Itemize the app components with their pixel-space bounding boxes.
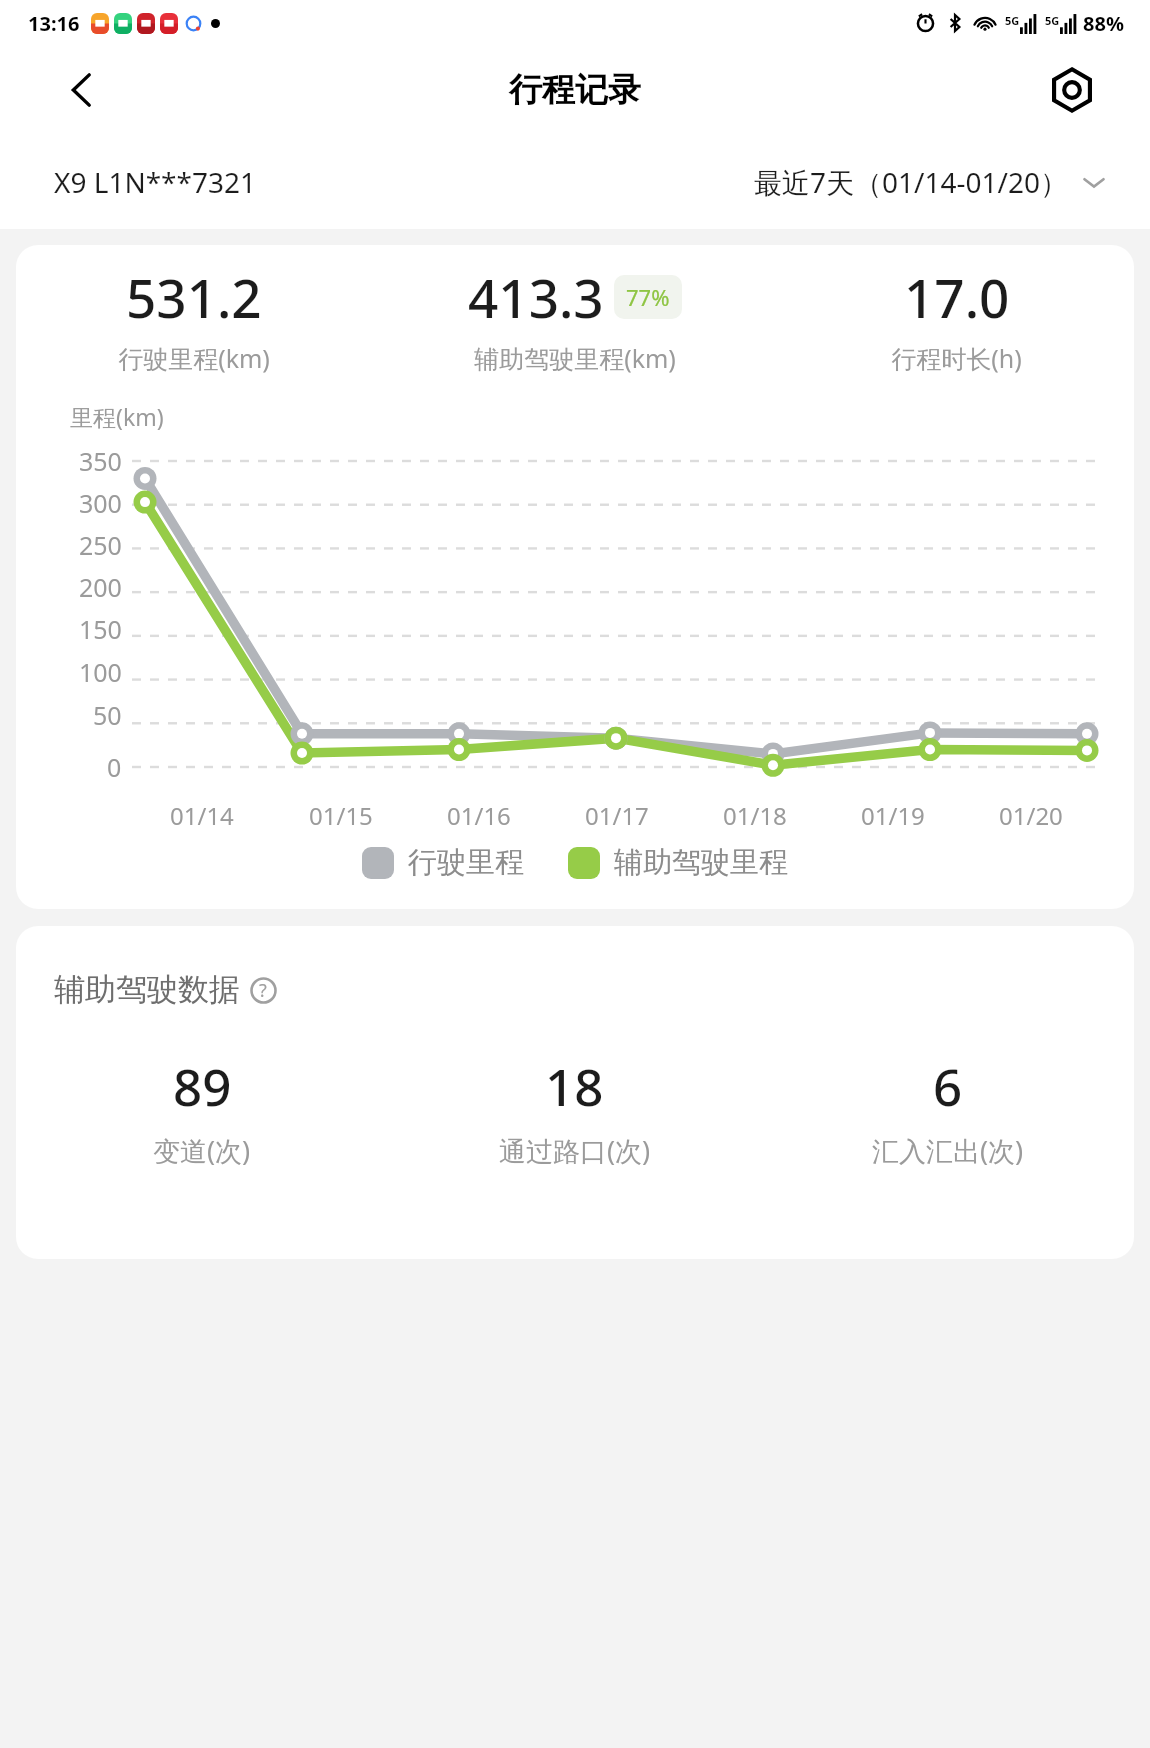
button[interactable]: 辅助驾驶里程 (568, 844, 788, 881)
staticText: 变道(次) (153, 1132, 251, 1169)
staticText: 18 (545, 1051, 604, 1120)
staticText: 行驶里程(km) (118, 341, 270, 375)
button[interactable]: Settings (1040, 58, 1104, 122)
staticText: 里程(km) (70, 401, 164, 432)
button[interactable]: 17.0 (779, 261, 1134, 375)
button[interactable]: 18 (388, 1051, 761, 1169)
staticText: X9 L1N***7321 (54, 163, 257, 201)
button[interactable]: 531.2 (16, 261, 371, 375)
button[interactable]: 413.3 (371, 261, 779, 375)
staticText: 辅助驾驶里程(km) (474, 341, 676, 375)
staticText: 通过路口(次) (499, 1132, 651, 1169)
button[interactable]: 89 (16, 1051, 388, 1169)
staticText: 250 (79, 528, 122, 562)
staticText: 5G (1005, 13, 1020, 28)
staticText: 最近7天（01/14-01/20） (754, 163, 1068, 201)
staticText: 6 (933, 1051, 963, 1120)
staticText: 01/19 (861, 799, 925, 832)
staticText: 150 (79, 612, 122, 646)
button[interactable]: 辅助驾驶数据 (54, 970, 278, 1009)
staticText: 行驶里程 (408, 844, 524, 881)
staticText: 413.3 (468, 261, 604, 333)
staticText: 300 (79, 486, 122, 520)
staticText: 01/17 (585, 799, 649, 832)
staticText: 辅助驾驶里程 (614, 844, 788, 881)
staticText: 77% (626, 282, 670, 312)
staticText: 531.2 (126, 261, 262, 333)
button[interactable]: Back (52, 60, 112, 120)
staticText: 100 (79, 655, 122, 689)
staticText: 50 (93, 698, 122, 732)
staticText: 17.0 (904, 261, 1010, 333)
staticText: ? (259, 978, 267, 1003)
staticText: 01/14 (170, 799, 234, 832)
staticText: 01/15 (309, 799, 373, 832)
button[interactable]: 最近7天（01/14-01/20） (754, 163, 1108, 201)
staticText: 汇入汇出(次) (872, 1132, 1024, 1169)
staticText: 350 (79, 444, 122, 478)
staticText: 0 (107, 750, 122, 784)
staticText: 200 (79, 570, 122, 604)
staticText: 88% (1083, 10, 1124, 37)
staticText: 行程记录 (509, 69, 641, 111)
staticText: 13:16 (28, 10, 80, 37)
staticText: 89 (173, 1051, 232, 1120)
button[interactable]: 6 (761, 1051, 1134, 1169)
button[interactable]: 行驶里程 (362, 844, 524, 881)
staticText: 01/18 (723, 799, 787, 832)
staticText: 01/20 (999, 799, 1063, 832)
staticText: 5G (1045, 13, 1060, 28)
staticText: 01/16 (447, 799, 511, 832)
staticText: 行程时长(h) (891, 341, 1022, 375)
staticText: 辅助驾驶数据 (54, 970, 240, 1009)
